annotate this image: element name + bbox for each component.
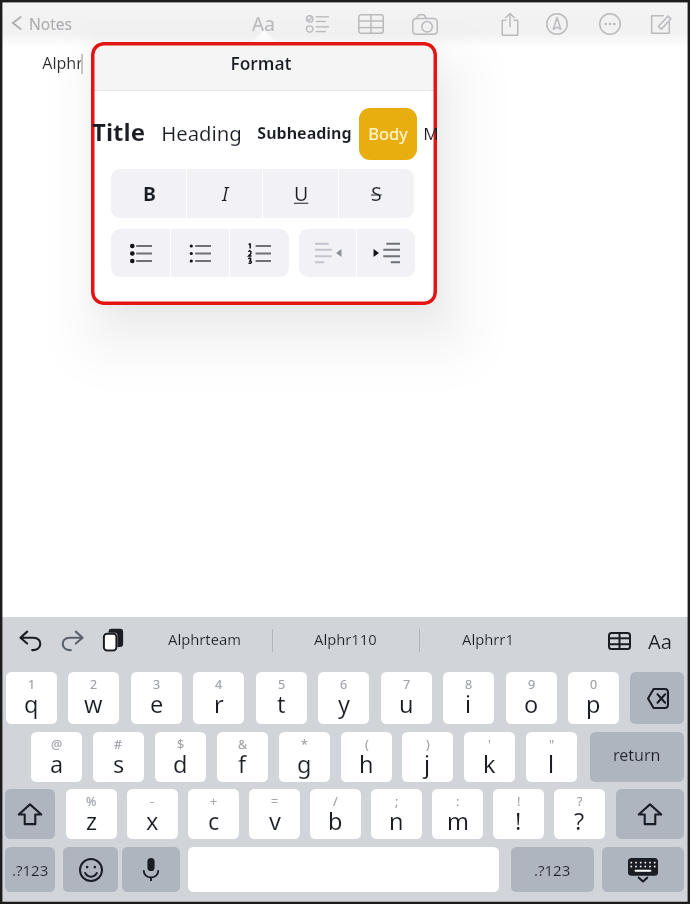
staticText: !	[515, 805, 522, 837]
staticText: 2	[90, 676, 98, 693]
button[interactable]: :	[432, 789, 483, 839]
button[interactable]: -	[127, 789, 178, 839]
button[interactable]: 2	[68, 672, 119, 724]
button[interactable]: ?	[554, 789, 605, 839]
button[interactable]: Shift	[5, 789, 55, 839]
button[interactable]: Hide keyboard	[602, 847, 684, 892]
button[interactable]: Undo	[11, 620, 51, 660]
button[interactable]: More	[592, 6, 628, 42]
button[interactable]: Checklist	[299, 6, 335, 42]
staticText: 0	[590, 676, 598, 693]
button[interactable]: $	[155, 732, 206, 782]
button[interactable]: 7	[381, 672, 432, 724]
button[interactable]: !	[493, 789, 544, 839]
button[interactable]	[359, 108, 417, 160]
button[interactable]: +	[188, 789, 239, 839]
button[interactable]: @	[31, 732, 82, 782]
staticText: (	[365, 736, 369, 753]
button[interactable]: "	[526, 732, 577, 782]
button[interactable]: 8	[443, 672, 494, 724]
staticText: -	[150, 793, 155, 810]
button[interactable]: (	[341, 732, 392, 782]
button[interactable]: Bulleted list	[111, 229, 170, 277]
button[interactable]: Paste	[93, 620, 133, 660]
button[interactable]: Redo	[52, 620, 92, 660]
button[interactable]: *	[279, 732, 330, 782]
staticText: $	[177, 736, 185, 753]
button[interactable]: Notes	[10, 10, 72, 36]
staticText: e	[150, 688, 164, 720]
staticText: "	[549, 736, 555, 753]
button[interactable]: )	[402, 732, 453, 782]
staticText: a	[50, 748, 64, 780]
staticText: Title	[92, 115, 145, 148]
button[interactable]: Markup	[539, 6, 575, 42]
staticText: u	[399, 688, 414, 720]
staticText: S	[371, 180, 382, 207]
staticText: I	[222, 180, 229, 207]
button[interactable]: #	[93, 732, 144, 782]
button[interactable]: S	[338, 169, 414, 218]
staticText: !	[517, 793, 521, 810]
button[interactable]: Dictate	[122, 847, 180, 892]
button[interactable]: Share	[492, 6, 528, 42]
button[interactable]: 9	[506, 672, 557, 724]
staticText: =	[271, 793, 279, 810]
button[interactable]: Table	[601, 623, 637, 659]
button[interactable]: Table	[353, 6, 389, 42]
staticText: o	[524, 688, 539, 720]
staticText: l	[548, 748, 555, 780]
button[interactable]: Heading	[160, 108, 244, 160]
staticText: M	[423, 122, 439, 145]
button[interactable]: U	[263, 169, 339, 218]
staticText: .?123	[12, 860, 49, 880]
button[interactable]: Format	[642, 623, 678, 659]
staticText: Alphrteam	[168, 629, 241, 649]
button[interactable]: I	[187, 169, 263, 218]
staticText: d	[173, 748, 188, 780]
button[interactable]: B	[111, 169, 187, 218]
button[interactable]: Format	[245, 6, 281, 42]
button[interactable]: Bulleted list	[170, 229, 229, 277]
staticText: Aa	[648, 628, 672, 655]
button[interactable]: Alphr110	[272, 617, 419, 672]
button[interactable]: Alphrr1	[419, 617, 556, 672]
button[interactable]: Numbered list	[230, 229, 289, 277]
button[interactable]: 0	[568, 672, 619, 724]
staticText: :	[456, 793, 460, 810]
button[interactable]: .?123	[5, 847, 55, 892]
button[interactable]: 1	[6, 672, 57, 724]
button[interactable]: &	[217, 732, 268, 782]
button[interactable]: New note	[642, 6, 678, 42]
button[interactable]: Subheading	[248, 108, 352, 160]
staticText: t	[277, 688, 286, 720]
staticText: U	[294, 180, 309, 207]
staticText: &	[238, 736, 248, 753]
button[interactable]: 3	[131, 672, 182, 724]
staticText: ?	[577, 793, 583, 810]
button[interactable]: Title	[95, 108, 160, 160]
button[interactable]: 5	[256, 672, 307, 724]
button[interactable]: =	[249, 789, 300, 839]
button[interactable]: 4	[193, 672, 244, 724]
button[interactable]: '	[464, 732, 515, 782]
button[interactable]: Backspace	[630, 672, 684, 724]
button[interactable]: return	[590, 732, 684, 782]
other: Numbered list	[248, 245, 271, 262]
button[interactable]: 6	[318, 672, 369, 724]
button[interactable]: Indent	[357, 229, 415, 277]
button[interactable]: %	[66, 789, 117, 839]
staticText: Alphr110	[314, 629, 377, 649]
button[interactable]: /	[310, 789, 361, 839]
staticText: B	[143, 180, 156, 207]
button[interactable]: ;	[371, 789, 422, 839]
button[interactable]: Camera	[406, 5, 444, 43]
button[interactable]: .?123	[511, 847, 594, 892]
staticText: Body	[368, 122, 408, 144]
button[interactable]: Alphrteam	[136, 617, 272, 672]
button[interactable]: Shift	[616, 789, 684, 839]
button[interactable]: Outdent	[299, 229, 357, 277]
staticText: w	[84, 688, 103, 720]
button[interactable]: Emoji	[63, 847, 118, 892]
